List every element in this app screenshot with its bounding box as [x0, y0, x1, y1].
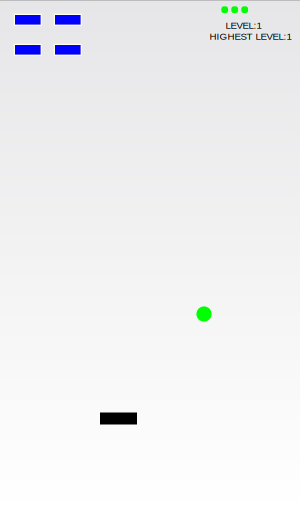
staticText: HIGHEST LEVEL:1	[209, 31, 291, 42]
button[interactable]: Brick	[14, 44, 42, 56]
button[interactable]: Lives remaining: 3	[221, 6, 248, 13]
button[interactable]: Brick	[54, 44, 82, 56]
staticText: LEVEL:1	[225, 20, 261, 31]
button[interactable]: Brick	[54, 14, 82, 26]
button[interactable]: Brick	[14, 14, 42, 26]
button[interactable]: Paddle	[100, 412, 137, 424]
